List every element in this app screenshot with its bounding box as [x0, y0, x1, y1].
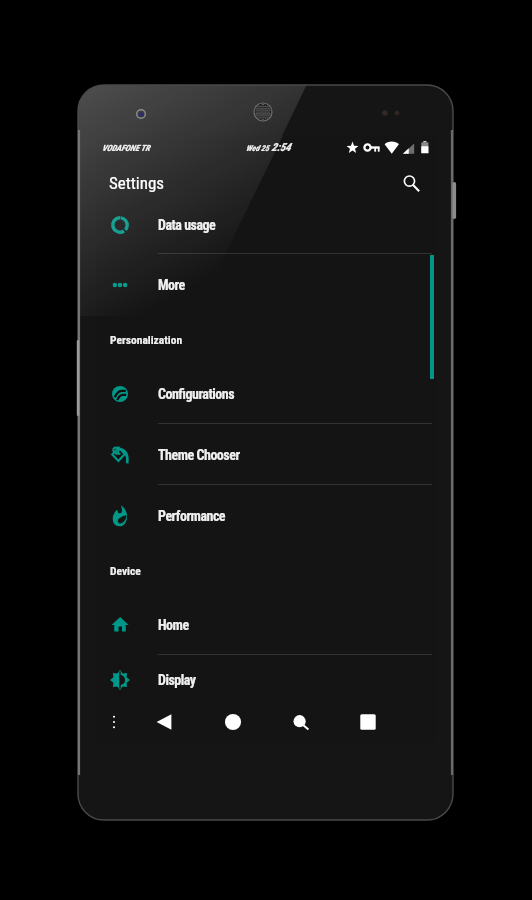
staticText: Configurations: [158, 386, 235, 402]
staticText: Wed 25: [246, 144, 269, 153]
button[interactable]: Display: [96, 655, 436, 704]
button[interactable]: Performance: [96, 485, 436, 546]
button[interactable]: Search: [284, 704, 316, 739]
button[interactable]: Back: [148, 704, 180, 739]
staticText: Personalization: [110, 333, 183, 346]
button[interactable]: Theme Chooser: [96, 424, 436, 485]
button[interactable]: Home: [96, 594, 436, 655]
staticText: Home: [158, 617, 189, 633]
button[interactable]: Menu: [98, 704, 130, 739]
button[interactable]: Configurations: [96, 363, 436, 424]
button[interactable]: Data usage: [96, 207, 436, 254]
staticText: Device: [110, 564, 141, 577]
staticText: Settings: [109, 173, 165, 193]
staticText: VODAFONE TR: [102, 143, 150, 153]
staticText: 2:54: [269, 141, 291, 154]
button[interactable]: Search: [396, 168, 426, 198]
staticText: Display: [158, 672, 196, 688]
staticText: Theme Chooser: [158, 447, 240, 463]
staticText: More: [158, 277, 185, 293]
button[interactable]: More: [96, 254, 436, 315]
button[interactable]: Home: [217, 704, 249, 739]
button[interactable]: Recents: [352, 704, 384, 739]
staticText: Performance: [158, 508, 226, 524]
staticText: Data usage: [158, 217, 216, 233]
